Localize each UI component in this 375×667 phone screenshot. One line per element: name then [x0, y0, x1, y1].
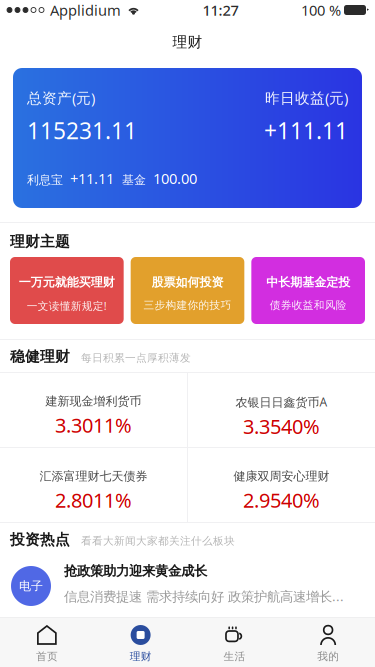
staticText: 稳健理财 — [10, 347, 70, 365]
staticText: 健康双周安心理财 — [233, 469, 329, 484]
button[interactable]: 农银日日鑫货币A — [188, 373, 375, 447]
staticText: 100.00 — [153, 168, 197, 188]
staticText: 我的 — [317, 650, 339, 663]
staticText: +11.11 — [70, 168, 114, 188]
staticText: 看看大新闻大家都关注什么板块 — [81, 534, 235, 547]
staticText: 理财 — [130, 650, 152, 663]
button[interactable]: 汇添富理财七天债券 — [0, 448, 187, 522]
staticText: 农银日日鑫货币A — [235, 394, 327, 410]
staticText: 昨日收益(元) — [265, 88, 348, 107]
button[interactable]: 理财 — [94, 618, 188, 667]
button[interactable]: 总资产(元) — [13, 68, 362, 208]
staticText: 建新现金增利货币 — [45, 394, 141, 409]
staticText: 3.3540% — [243, 413, 320, 439]
staticText: 抢政策助力迎来黄金成长 — [64, 563, 207, 579]
staticText: 3.3011% — [55, 412, 132, 438]
staticText: 信息消费提速 需求持续向好 政策护航高速增长... — [64, 587, 344, 605]
staticText: 2.8011% — [55, 487, 132, 513]
button[interactable]: 首页 — [0, 618, 94, 667]
staticText: 理财主题 — [10, 232, 70, 250]
button[interactable]: 电子 — [0, 550, 375, 616]
staticText: 生活 — [223, 650, 245, 663]
staticText: 基金 — [122, 173, 146, 187]
staticText: 三步构建你的技巧 — [143, 299, 231, 312]
staticText: 2.9540% — [243, 487, 320, 513]
staticText: 中长期基金定投 — [266, 275, 350, 290]
staticText: Applidium — [50, 0, 121, 20]
button[interactable]: 生活 — [187, 618, 281, 667]
staticText: 115231.11 — [27, 115, 137, 146]
button[interactable]: 我的 — [281, 618, 375, 667]
staticText: 11:27 — [202, 0, 238, 20]
button[interactable]: 股票如何投资 — [131, 257, 244, 324]
staticText: +111.11 — [264, 115, 348, 146]
staticText: 债券收益和风险 — [270, 299, 347, 312]
button[interactable]: 中长期基金定投 — [251, 257, 365, 324]
staticText: 电子 — [19, 579, 43, 593]
staticText: 理财 — [172, 33, 202, 51]
staticText: 总资产(元) — [27, 88, 95, 107]
staticText: 每日积累一点厚积薄发 — [81, 351, 191, 364]
staticText: 汇添富理财七天债券 — [39, 469, 147, 484]
staticText: 首页 — [36, 650, 58, 663]
staticText: 一文读懂新规定! — [27, 299, 107, 313]
staticText: 一万元就能买理财 — [19, 275, 115, 290]
button[interactable]: 一万元就能买理财 — [10, 257, 124, 324]
staticText: 利息宝 — [27, 173, 63, 187]
staticText: 投资热点 — [10, 530, 70, 548]
button[interactable]: 健康双周安心理财 — [188, 448, 375, 522]
staticText: 100 % — [301, 0, 341, 20]
button[interactable]: 建新现金增利货币 — [0, 373, 187, 447]
staticText: 股票如何投资 — [151, 275, 223, 290]
